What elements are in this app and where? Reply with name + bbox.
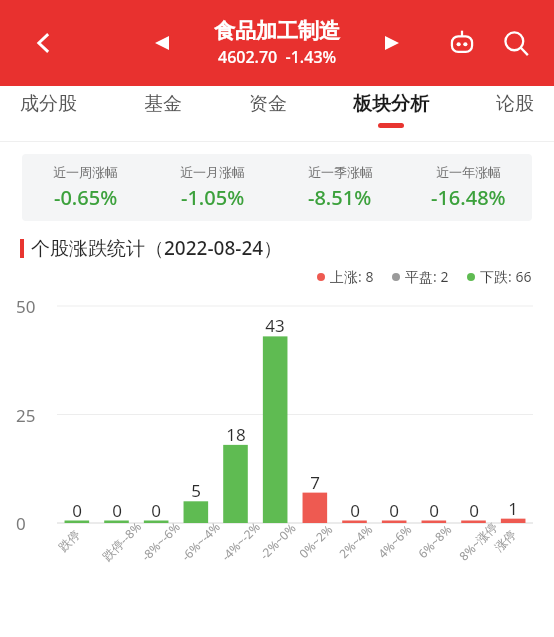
staticText: 跌停--8% — [98, 518, 144, 564]
staticText: 4602.70 -1.43% — [218, 46, 337, 68]
staticText: 近一周涨幅 — [53, 164, 118, 180]
button[interactable]: Next sector — [375, 26, 409, 60]
button[interactable]: 基金 — [134, 86, 192, 129]
staticText: 下跌: 66 — [480, 267, 532, 286]
staticText: 6%~8% — [414, 521, 455, 561]
staticText: 食品加工制造 — [214, 18, 340, 44]
staticText: -8.51% — [308, 184, 372, 211]
button[interactable]: Previous sector — [145, 26, 179, 60]
button[interactable]: 板块分析 — [343, 86, 439, 134]
staticText: 成分股 — [20, 92, 77, 116]
staticText: 0 — [62, 499, 92, 522]
staticText: 8%~涨停 — [455, 518, 501, 564]
staticText: 5 — [181, 479, 211, 502]
staticText: 0 — [379, 499, 409, 522]
staticText: 7 — [300, 471, 330, 494]
staticText: 跌停 — [55, 527, 83, 554]
button[interactable]: AI assistant — [440, 21, 484, 65]
staticText: 0 — [102, 499, 132, 522]
staticText: 4%~6% — [374, 521, 415, 561]
button[interactable]: 近一年涨幅 — [404, 164, 532, 211]
staticText: 涨停 — [491, 527, 519, 554]
button[interactable]: 资金 — [239, 86, 297, 129]
staticText: 资金 — [249, 92, 287, 116]
staticText: 0 — [16, 512, 26, 535]
staticText: 43 — [260, 314, 290, 337]
button[interactable]: 近一季涨幅 — [276, 164, 404, 211]
staticText: -0.65% — [54, 184, 118, 211]
staticText: 近一月涨幅 — [180, 164, 245, 180]
staticText: 2%~4% — [335, 521, 376, 561]
staticText: 0%~2% — [295, 521, 336, 561]
staticText: -6%~-4% — [177, 518, 223, 564]
staticText: -16.48% — [431, 184, 506, 211]
staticText: 板块分析 — [353, 92, 429, 116]
staticText: -4%~-2% — [217, 518, 263, 564]
staticText: 个股涨跌统计（2022-08-24） — [31, 235, 283, 261]
staticText: 近一季涨幅 — [308, 164, 373, 180]
staticText: 1 — [498, 497, 528, 520]
staticText: 上涨: 8 — [330, 267, 374, 286]
staticText: -1.05% — [181, 184, 245, 211]
button[interactable]: 成分股 — [10, 86, 87, 129]
staticText: -2%~0% — [256, 519, 299, 562]
staticText: 25 — [16, 404, 36, 427]
staticText: 18 — [221, 423, 251, 446]
staticText: 0 — [141, 499, 171, 522]
staticText: 近一年涨幅 — [436, 164, 501, 180]
staticText: 平盘: 2 — [405, 267, 449, 286]
staticText: 0 — [459, 499, 489, 522]
staticText: 50 — [16, 295, 36, 318]
staticText: -8%~-6% — [137, 518, 183, 564]
staticText: 0 — [419, 499, 449, 522]
button[interactable]: 论股 — [486, 86, 544, 129]
staticText: 论股 — [496, 92, 534, 116]
staticText: 基金 — [144, 92, 182, 116]
staticText: 0 — [340, 499, 370, 522]
button[interactable]: Search — [494, 21, 538, 65]
button[interactable]: Back — [22, 21, 66, 65]
button[interactable]: 近一月涨幅 — [149, 164, 276, 211]
button[interactable]: 近一周涨幅 — [22, 164, 149, 211]
